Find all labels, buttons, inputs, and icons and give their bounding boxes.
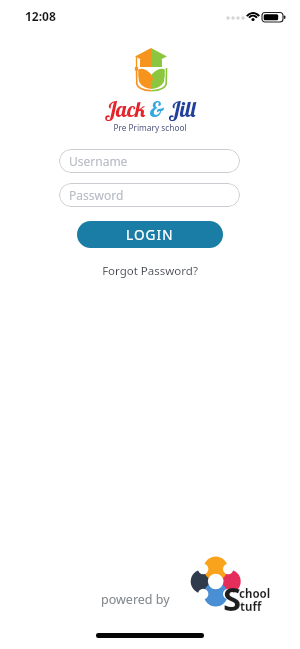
staticText: Pre Primary school bbox=[0, 122, 300, 133]
button[interactable]: Password bbox=[59, 183, 240, 207]
staticText: powered by bbox=[101, 591, 170, 608]
staticText: Password bbox=[69, 187, 124, 203]
button[interactable]: LOGIN bbox=[77, 221, 223, 248]
staticText: Username bbox=[69, 153, 128, 169]
staticText: LOGIN bbox=[126, 226, 174, 244]
button[interactable]: Forgot Password? bbox=[0, 263, 300, 279]
button[interactable]: Username bbox=[59, 149, 240, 173]
staticText: 12:08 bbox=[25, 8, 56, 24]
staticText: Jack & Jill bbox=[0, 95, 300, 122]
staticText: tuff bbox=[240, 599, 262, 615]
staticText: S bbox=[223, 576, 242, 621]
staticText: chool bbox=[239, 586, 271, 602]
